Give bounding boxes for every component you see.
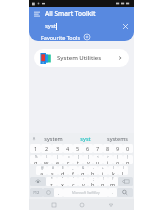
button[interactable]: ! bbox=[98, 177, 108, 186]
staticText: m bbox=[110, 181, 116, 186]
staticText: & bbox=[82, 166, 85, 170]
staticText: a bbox=[40, 170, 44, 175]
staticText: $ bbox=[62, 166, 64, 170]
button[interactable]: & bbox=[78, 166, 88, 175]
button[interactable]: ? bbox=[108, 177, 118, 186]
staticText: ! bbox=[103, 177, 104, 181]
button[interactable]: Shift bbox=[30, 177, 46, 186]
button[interactable]: 5 bbox=[73, 144, 83, 153]
staticText: ] bbox=[88, 155, 89, 159]
staticText: p bbox=[126, 159, 130, 164]
staticText: v bbox=[82, 181, 85, 186]
button[interactable]: syst bbox=[69, 134, 101, 143]
staticText: All Smart Toolkit bbox=[45, 9, 96, 18]
staticText: ' bbox=[73, 177, 74, 181]
button[interactable]: _ bbox=[68, 166, 78, 175]
button[interactable]: . bbox=[108, 188, 117, 197]
button[interactable]: Open navigation menu bbox=[32, 9, 42, 19]
button[interactable]: [ bbox=[73, 155, 83, 164]
button[interactable]: ' bbox=[68, 177, 78, 186]
staticText: . bbox=[112, 190, 114, 195]
staticText: syst bbox=[45, 22, 56, 30]
staticText: o bbox=[116, 159, 120, 164]
staticText: r bbox=[67, 159, 70, 164]
staticText: i bbox=[107, 159, 109, 164]
staticText: 5 bbox=[76, 145, 80, 152]
staticText: { bbox=[117, 155, 119, 159]
button[interactable]: # bbox=[47, 166, 58, 175]
button[interactable]: system bbox=[38, 134, 69, 143]
button[interactable]: > bbox=[103, 155, 113, 164]
button[interactable]: | bbox=[52, 155, 63, 164]
button[interactable]: Home bbox=[77, 200, 86, 209]
staticText: } bbox=[127, 155, 129, 159]
button[interactable]: Space bbox=[63, 188, 108, 197]
button[interactable]: + bbox=[98, 166, 108, 175]
staticText: - bbox=[93, 166, 94, 170]
staticText: System Utilities bbox=[57, 54, 102, 62]
button[interactable]: 8 bbox=[103, 144, 113, 153]
button[interactable]: " bbox=[57, 177, 68, 186]
staticText: % bbox=[35, 155, 38, 159]
button[interactable]: syst bbox=[45, 20, 130, 32]
button[interactable]: 9 bbox=[113, 144, 123, 153]
button[interactable]: ( bbox=[108, 166, 118, 175]
staticText: ; bbox=[93, 177, 94, 181]
button[interactable]: * bbox=[46, 177, 57, 186]
button[interactable]: : bbox=[78, 177, 88, 186]
staticText: e bbox=[56, 159, 60, 164]
staticText: h bbox=[91, 170, 95, 175]
button[interactable]: 3 bbox=[52, 144, 63, 153]
button[interactable]: Recents bbox=[49, 200, 58, 209]
staticText: _ bbox=[72, 166, 74, 170]
button[interactable]: System Utilities bbox=[34, 49, 129, 67]
button[interactable]: systems bbox=[101, 134, 133, 143]
staticText: g bbox=[81, 170, 85, 175]
staticText: 0 bbox=[126, 145, 130, 152]
button[interactable]: = bbox=[63, 155, 73, 164]
button[interactable]: % bbox=[30, 155, 41, 164]
button[interactable]: Search bbox=[117, 188, 133, 197]
staticText: z bbox=[50, 181, 53, 186]
staticText: 3 bbox=[56, 145, 60, 152]
staticText: # bbox=[52, 166, 54, 170]
button[interactable]: - bbox=[88, 166, 98, 175]
button[interactable]: 0 bbox=[123, 144, 133, 153]
other: Open bbox=[117, 55, 123, 61]
button[interactable]: 4 bbox=[63, 144, 73, 153]
button[interactable]: < bbox=[93, 155, 103, 164]
button[interactable]: ) bbox=[118, 166, 128, 175]
button[interactable]: \ bbox=[41, 155, 52, 164]
button[interactable]: ; bbox=[88, 177, 98, 186]
staticText: < bbox=[97, 155, 99, 159]
button[interactable]: Backspace bbox=[118, 177, 133, 186]
staticText: ?12 bbox=[33, 190, 40, 195]
staticText: c bbox=[72, 181, 75, 186]
staticText: 4 bbox=[66, 145, 70, 152]
staticText: 7 bbox=[96, 145, 100, 152]
button[interactable]: 1 bbox=[30, 144, 41, 153]
staticText: t bbox=[77, 159, 79, 164]
button[interactable]: Voice input bbox=[30, 134, 38, 143]
button[interactable]: ] bbox=[83, 155, 93, 164]
button[interactable]: ?12 bbox=[30, 188, 43, 197]
staticText: syst bbox=[80, 135, 91, 142]
staticText: 8 bbox=[106, 145, 110, 152]
staticText: n bbox=[101, 181, 105, 186]
button[interactable]: Back bbox=[106, 200, 115, 209]
button[interactable]: @ bbox=[36, 166, 47, 175]
button[interactable]: } bbox=[123, 155, 133, 164]
staticText: + bbox=[102, 166, 104, 170]
button[interactable]: , bbox=[54, 188, 63, 197]
staticText: [ bbox=[78, 155, 79, 159]
button[interactable]: Favourite Tools bbox=[41, 33, 90, 41]
staticText: : bbox=[83, 177, 84, 181]
button[interactable]: Emoji bbox=[43, 188, 54, 197]
button[interactable]: { bbox=[113, 155, 123, 164]
button[interactable]: 7 bbox=[93, 144, 103, 153]
button[interactable]: 2 bbox=[41, 144, 52, 153]
button[interactable]: 6 bbox=[83, 144, 93, 153]
button[interactable]: Clear search bbox=[121, 22, 130, 31]
button[interactable]: $ bbox=[58, 166, 68, 175]
staticText: systems bbox=[107, 135, 128, 142]
